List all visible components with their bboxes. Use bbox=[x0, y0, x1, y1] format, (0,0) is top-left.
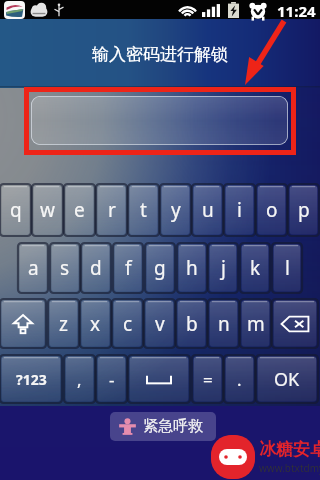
button[interactable]: s bbox=[50, 243, 80, 293]
staticText: x bbox=[90, 311, 101, 337]
staticText: y bbox=[171, 197, 181, 223]
button[interactable]: a bbox=[18, 243, 48, 293]
button[interactable]: u bbox=[192, 184, 223, 236]
button[interactable]: y bbox=[160, 184, 191, 236]
button[interactable]: Password entry bbox=[31, 96, 288, 145]
staticText: p bbox=[298, 197, 310, 223]
staticText: o bbox=[266, 197, 278, 223]
staticText: m bbox=[247, 311, 265, 337]
button[interactable]: e bbox=[64, 184, 95, 236]
button[interactable]: n bbox=[208, 299, 239, 348]
staticText: z bbox=[59, 311, 68, 337]
button[interactable]: i bbox=[224, 184, 255, 236]
button[interactable]: r bbox=[96, 184, 127, 236]
button[interactable]: c bbox=[112, 299, 143, 348]
staticText: ?123 bbox=[16, 370, 47, 389]
button[interactable]: z bbox=[48, 299, 79, 348]
staticText: h bbox=[186, 255, 198, 281]
button[interactable]: = bbox=[192, 355, 223, 403]
staticText: e bbox=[74, 197, 85, 223]
button[interactable]: 紧急呼救 bbox=[110, 412, 216, 441]
staticText: j bbox=[221, 255, 226, 281]
staticText: c bbox=[123, 311, 133, 337]
staticText: 11:24 bbox=[277, 1, 316, 20]
staticText: b bbox=[186, 311, 198, 337]
button[interactable]: x bbox=[80, 299, 111, 348]
button[interactable]: q bbox=[0, 184, 31, 236]
staticText: . bbox=[237, 368, 242, 391]
staticText: t bbox=[140, 197, 147, 223]
button[interactable]: g bbox=[145, 243, 175, 293]
staticText: www.btxtdmy.com bbox=[259, 461, 320, 475]
button[interactable]: l bbox=[272, 243, 302, 293]
staticText: l bbox=[285, 255, 290, 281]
staticText: 紧急呼救 bbox=[143, 417, 203, 436]
staticText: d bbox=[90, 255, 102, 281]
button[interactable]: o bbox=[256, 184, 287, 236]
staticText: r bbox=[108, 197, 116, 223]
button[interactable]: , bbox=[64, 355, 95, 403]
staticText: 冰糖安卓网 bbox=[259, 439, 320, 460]
staticText: q bbox=[10, 197, 22, 223]
button[interactable]: p bbox=[288, 184, 319, 236]
staticText: w bbox=[40, 197, 55, 223]
button[interactable]: w bbox=[32, 184, 63, 236]
button[interactable]: k bbox=[240, 243, 270, 293]
button[interactable]: ?123 bbox=[0, 355, 62, 403]
staticText: k bbox=[250, 255, 261, 281]
button[interactable]: b bbox=[176, 299, 207, 348]
button[interactable]: m bbox=[240, 299, 271, 348]
button[interactable]: t bbox=[128, 184, 159, 236]
button[interactable]: . bbox=[224, 355, 255, 403]
button[interactable]: f bbox=[113, 243, 143, 293]
button[interactable]: d bbox=[81, 243, 111, 293]
staticText: 输入密码进行解锁 bbox=[92, 44, 228, 65]
staticText: OK bbox=[274, 367, 300, 392]
button[interactable]: h bbox=[177, 243, 207, 293]
staticText: f bbox=[125, 255, 132, 281]
staticText: n bbox=[218, 311, 230, 337]
staticText: s bbox=[60, 255, 70, 281]
button[interactable]: v bbox=[144, 299, 175, 348]
button[interactable]: Delete bbox=[272, 299, 318, 348]
staticText: - bbox=[109, 368, 115, 391]
staticText: a bbox=[28, 255, 39, 281]
staticText: u bbox=[202, 197, 214, 223]
staticText: g bbox=[154, 255, 166, 281]
button[interactable]: OK bbox=[256, 355, 318, 403]
staticText: i bbox=[237, 197, 242, 223]
button[interactable]: j bbox=[208, 243, 238, 293]
staticText: , bbox=[77, 368, 82, 391]
button[interactable]: Space bbox=[128, 355, 190, 403]
staticText: = bbox=[203, 368, 213, 391]
button[interactable]: Shift bbox=[0, 299, 46, 348]
button[interactable]: - bbox=[96, 355, 127, 403]
staticText: v bbox=[155, 311, 165, 337]
